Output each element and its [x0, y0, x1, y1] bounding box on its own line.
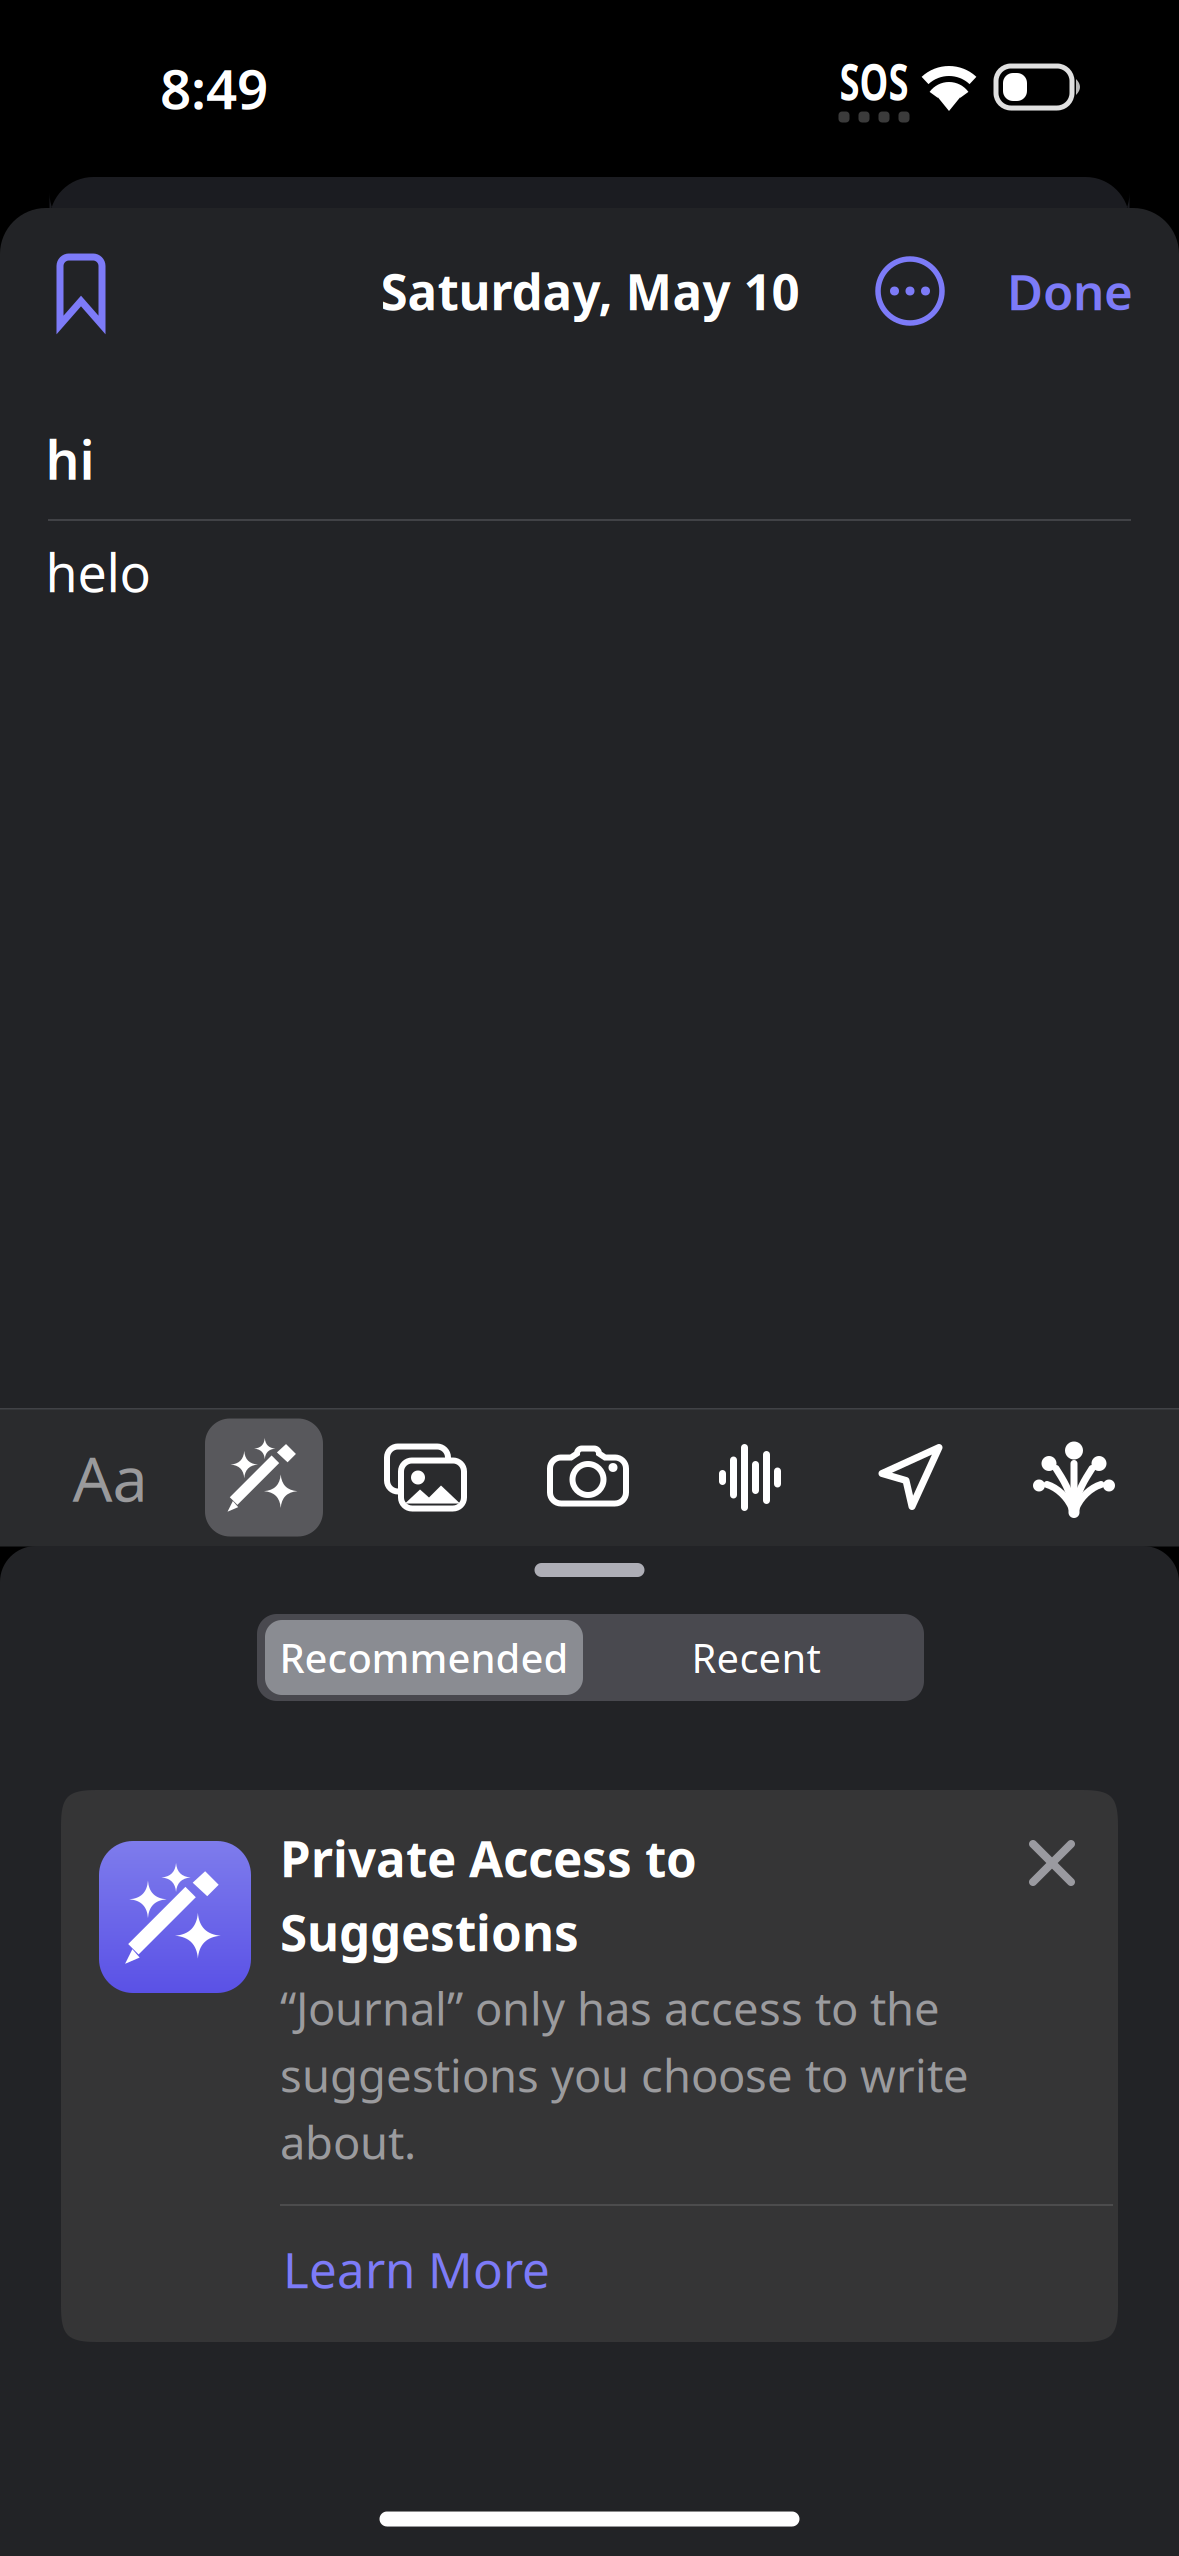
staticText: about.: [280, 2112, 416, 2172]
button[interactable]: Location: [841, 1418, 981, 1536]
button[interactable]: Recommended: [260, 1614, 588, 1701]
button[interactable]: Writing suggestions: [205, 1418, 323, 1536]
staticText: “Journal” only has access to the: [280, 1978, 940, 2038]
button[interactable]: Audio recording: [680, 1418, 820, 1536]
staticText: Done: [1007, 258, 1133, 324]
button[interactable]: Text formatting: [40, 1418, 180, 1536]
staticText: Suggestions: [280, 1899, 579, 1965]
button[interactable]: Bookmark: [29, 239, 133, 343]
staticText: hi: [45, 424, 94, 494]
button[interactable]: Journaling suggestions: [1004, 1418, 1144, 1536]
staticText: Recent: [691, 1631, 820, 1684]
staticText: Recommended: [279, 1631, 568, 1684]
staticText: Learn More: [283, 2236, 550, 2302]
staticText: suggestions you choose to write: [280, 2045, 969, 2105]
button[interactable]: Done: [990, 239, 1150, 343]
button[interactable]: More options: [858, 239, 962, 343]
staticText: Aa: [72, 1436, 147, 1519]
button[interactable]: Learn More: [283, 2224, 573, 2314]
staticText: Private Access to: [280, 1825, 697, 1891]
staticText: 8:49: [160, 52, 268, 124]
button[interactable]: Camera: [518, 1418, 658, 1536]
staticText: helo: [45, 537, 150, 607]
staticText: SOS: [826, 47, 922, 114]
staticText: Saturday, May 10: [380, 258, 799, 324]
button[interactable]: Dismiss: [1017, 1828, 1087, 1898]
button[interactable]: Recent: [589, 1614, 922, 1701]
button[interactable]: Photos: [355, 1418, 495, 1536]
